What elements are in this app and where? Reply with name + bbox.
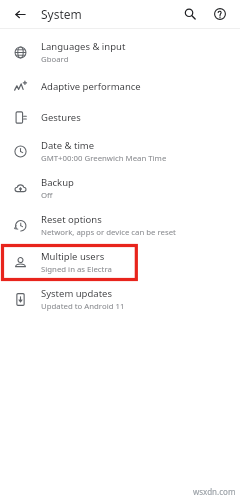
staticText: System updates: [41, 287, 112, 300]
staticText: Backup: [41, 176, 74, 189]
button[interactable]: Adaptive performance: [0, 71, 240, 102]
button[interactable]: Search: [177, 1, 203, 27]
staticText: Signed in as Electra: [41, 264, 112, 275]
staticText: System: [41, 6, 82, 22]
staticText: Multiple users: [41, 250, 105, 263]
staticText: Reset options: [41, 213, 102, 226]
staticText: GMT+00:00 Greenwich Mean Time: [41, 153, 167, 164]
staticText: Network, apps or device can be reset: [41, 227, 176, 238]
staticText: Off: [41, 190, 53, 201]
staticText: Gboard: [41, 54, 69, 65]
button[interactable]: Multiple users: [0, 244, 240, 281]
button[interactable]: Reset options: [0, 207, 240, 244]
button[interactable]: Help: [207, 1, 233, 27]
staticText: Gestures: [41, 111, 81, 124]
button[interactable]: Languages & input: [0, 34, 240, 71]
staticText: Adaptive performance: [41, 80, 141, 93]
button[interactable]: Date & time: [0, 133, 240, 170]
button[interactable]: Gestures: [0, 102, 240, 133]
button[interactable]: System updates: [0, 281, 240, 318]
button[interactable]: Back: [7, 1, 33, 27]
staticText: Languages & input: [41, 40, 126, 53]
staticText: Updated to Android 11: [41, 301, 125, 312]
button[interactable]: Backup: [0, 170, 240, 207]
staticText: wsxdn.com: [193, 486, 236, 497]
staticText: Date & time: [41, 139, 95, 152]
